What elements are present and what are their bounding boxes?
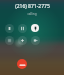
button[interactable]: Hold xyxy=(18,24,27,33)
button[interactable]: Speaker xyxy=(5,24,14,33)
staticText: calling xyxy=(27,12,37,16)
staticText: (216) 871-2775 xyxy=(15,3,50,10)
button[interactable]: Keypad xyxy=(5,36,14,45)
button[interactable]: Video call xyxy=(31,36,40,45)
button[interactable]: Add call xyxy=(18,36,27,45)
button[interactable]: Mute xyxy=(31,24,39,32)
button[interactable]: End call xyxy=(17,59,27,69)
